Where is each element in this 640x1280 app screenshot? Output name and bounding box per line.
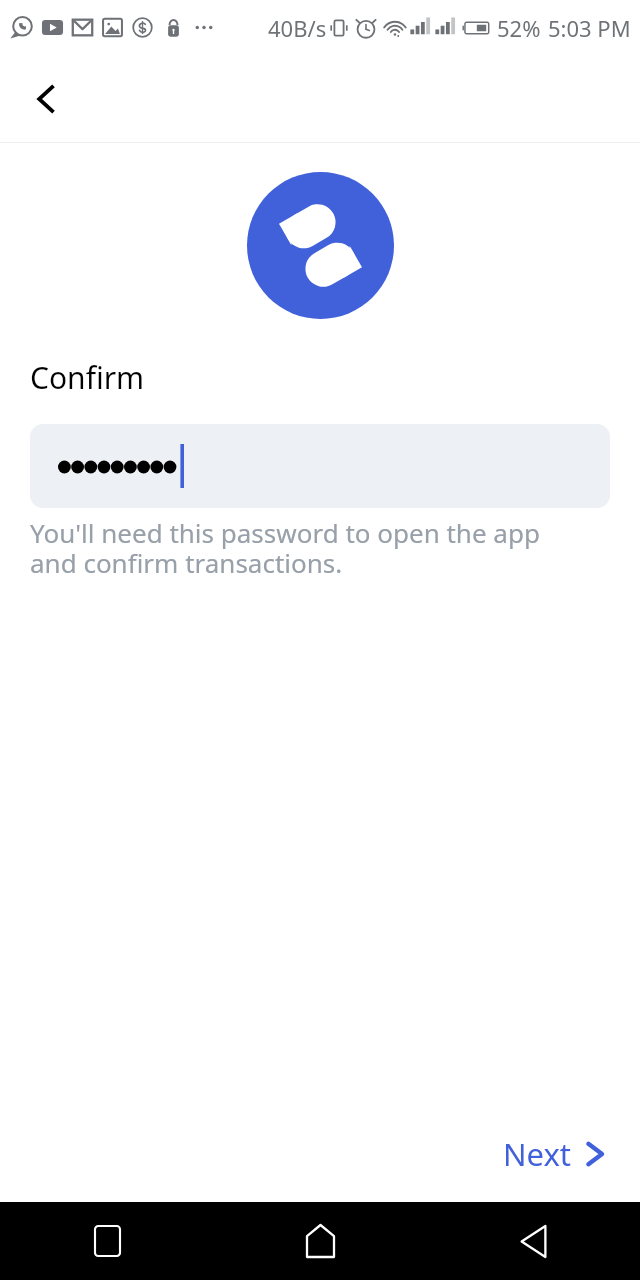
button[interactable]: Back xyxy=(16,69,76,129)
staticText: Confirm xyxy=(30,357,145,398)
staticText: 40B/s xyxy=(268,13,327,43)
staticText: Next xyxy=(503,1133,572,1175)
button[interactable]: Home xyxy=(214,1202,427,1280)
button[interactable]: Password field xyxy=(30,424,610,508)
button[interactable]: Back xyxy=(427,1202,640,1280)
staticText: 5:03 PM xyxy=(548,13,631,43)
button[interactable]: Recents xyxy=(0,1202,214,1280)
staticText: 52% xyxy=(497,13,541,43)
button[interactable]: Next xyxy=(493,1123,616,1185)
staticText: You'll need this password to open the ap… xyxy=(30,515,590,581)
